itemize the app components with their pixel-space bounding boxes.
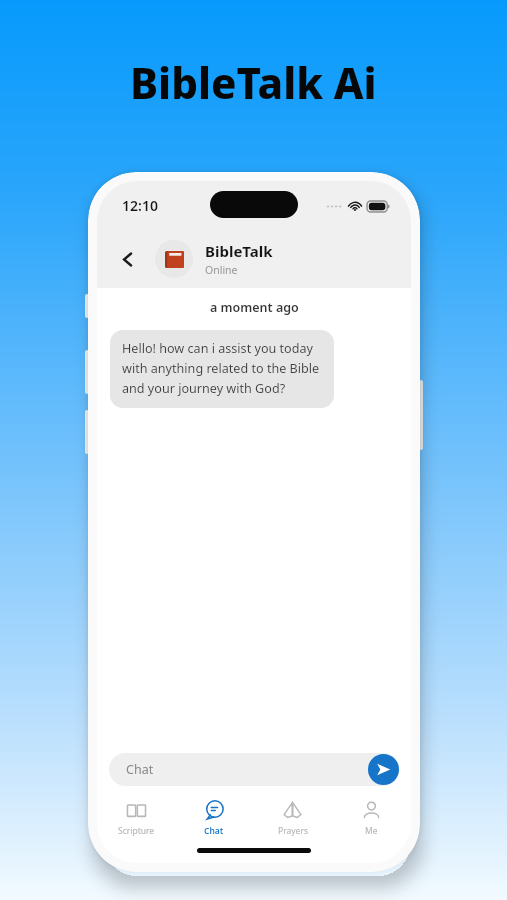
staticText: Chat — [204, 825, 224, 837]
button[interactable]: Chat — [109, 753, 399, 786]
button[interactable]: Back — [110, 242, 144, 276]
button[interactable]: Chat — [175, 795, 253, 842]
button[interactable]: BibleTalk — [205, 241, 273, 277]
button[interactable]: Hello! how can i assist you today with a… — [110, 330, 334, 408]
staticText: 12:10 — [122, 196, 158, 215]
staticText: Hello! how can i assist you today with a… — [122, 340, 324, 397]
staticText: Chat — [126, 761, 154, 778]
staticText: Me — [365, 825, 378, 837]
staticText: Online — [205, 263, 238, 277]
staticText: a moment ago — [210, 299, 299, 316]
staticText: Prayers — [278, 825, 308, 837]
button[interactable]: Prayers — [253, 795, 332, 842]
button[interactable]: Send — [368, 754, 399, 785]
button[interactable]: Me — [332, 795, 411, 842]
button[interactable]: Scripture — [97, 795, 175, 842]
staticText: Scripture — [118, 825, 155, 837]
staticText: BibleTalk — [205, 241, 273, 261]
staticText: BibleTalk Ai — [130, 54, 377, 111]
